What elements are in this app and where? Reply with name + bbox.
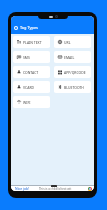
staticText: EMAIL — [64, 55, 75, 60]
staticText: WIFI — [23, 100, 31, 105]
staticText: APP/QRCODE — [64, 70, 86, 75]
button[interactable]: APP/QRCODE — [54, 66, 91, 78]
staticText: PLAIN TEXT — [23, 40, 42, 45]
button[interactable]: URL — [54, 36, 91, 48]
button[interactable]: Tag Types — [11, 21, 94, 34]
staticText: Tag Types — [20, 25, 38, 30]
button[interactable]: VCARD — [13, 81, 50, 93]
staticText: SMS — [23, 55, 30, 60]
button[interactable]: PLAIN TEXT — [13, 36, 50, 48]
button[interactable]: WIFI — [13, 96, 50, 108]
staticText: URL — [64, 40, 71, 45]
staticText: This is a child/id text wit — [39, 187, 72, 191]
button[interactable]: CONTACT — [13, 66, 50, 78]
button[interactable]: BLUETOOTH — [54, 81, 91, 93]
other: Chrome — [88, 187, 92, 191]
button[interactable]: EMAIL — [54, 51, 91, 63]
staticText: Nice job! — [15, 186, 30, 191]
staticText: VCARD — [23, 85, 35, 90]
staticText: BLUETOOTH — [64, 85, 84, 90]
staticText: CONTACT — [23, 70, 39, 75]
button[interactable]: SMS — [13, 51, 50, 63]
